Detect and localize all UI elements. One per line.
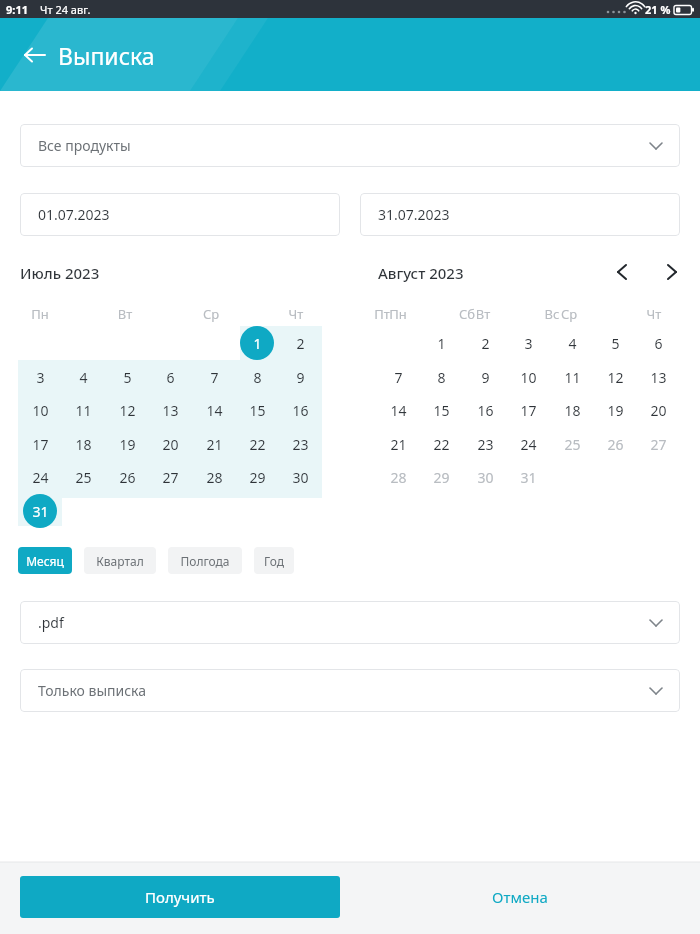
button[interactable]: 19	[594, 393, 636, 427]
button[interactable]: 11	[551, 360, 593, 394]
button[interactable]: 24	[19, 460, 61, 494]
button[interactable]: 6	[637, 326, 679, 360]
staticText: Отмена	[492, 887, 548, 907]
button[interactable]: 13	[637, 360, 679, 394]
button[interactable]: Next month	[654, 255, 690, 289]
button[interactable]: .pdf	[20, 601, 680, 644]
button[interactable]: 4	[551, 326, 593, 360]
button[interactable]: 29	[236, 460, 278, 494]
button[interactable]: 6	[149, 360, 191, 394]
button[interactable]: 18	[551, 393, 593, 427]
staticText: 5	[611, 334, 620, 353]
button[interactable]: 2	[464, 326, 506, 360]
button[interactable]: 12	[594, 360, 636, 394]
button[interactable]: 15	[420, 393, 462, 427]
button[interactable]: 24	[507, 427, 549, 461]
button[interactable]: Квартал	[84, 547, 156, 574]
button[interactable]: 14	[377, 393, 419, 427]
staticText: 31	[520, 468, 537, 487]
button[interactable]: 12	[106, 393, 148, 427]
staticText: 10	[32, 401, 49, 420]
button[interactable]: 29	[420, 460, 462, 494]
button[interactable]: 16	[279, 393, 321, 427]
button[interactable]: 01.07.2023	[20, 193, 340, 236]
button[interactable]: 3	[19, 360, 61, 394]
staticText: 7	[210, 368, 219, 387]
button[interactable]: 16	[464, 393, 506, 427]
button[interactable]: 8	[420, 360, 462, 394]
button[interactable]: 7	[377, 360, 419, 394]
button[interactable]: Все продукты	[20, 124, 680, 167]
staticText: 23	[477, 435, 494, 454]
button[interactable]: 8	[236, 360, 278, 394]
button[interactable]: 1	[236, 326, 278, 360]
button[interactable]: 21	[377, 427, 419, 461]
button[interactable]: 11	[62, 393, 104, 427]
button[interactable]: 5	[594, 326, 636, 360]
button[interactable]: 23	[464, 427, 506, 461]
staticText: 11	[75, 401, 92, 420]
button[interactable]: 30	[464, 460, 506, 494]
staticText: 19	[119, 435, 136, 454]
staticText: 22	[249, 435, 266, 454]
staticText: 29	[433, 468, 450, 487]
button[interactable]: 31	[507, 460, 549, 494]
button[interactable]: Полгода	[168, 547, 242, 574]
staticText: Июль 2023	[20, 263, 100, 283]
button[interactable]: 25	[551, 427, 593, 461]
button[interactable]: 21	[193, 427, 235, 461]
button[interactable]: 15	[236, 393, 278, 427]
button[interactable]: 23	[279, 427, 321, 461]
button[interactable]: 4	[62, 360, 104, 394]
button[interactable]: 28	[377, 460, 419, 494]
staticText: Ср	[190, 305, 232, 323]
staticText: 13	[650, 368, 667, 387]
staticText: 1	[253, 334, 262, 353]
button[interactable]: 19	[106, 427, 148, 461]
button[interactable]: Отмена	[400, 876, 640, 918]
staticText: 20	[162, 435, 179, 454]
button[interactable]: 20	[149, 427, 191, 461]
button[interactable]: 25	[62, 460, 104, 494]
button[interactable]: 7	[193, 360, 235, 394]
button[interactable]: 5	[106, 360, 148, 394]
button[interactable]: 22	[236, 427, 278, 461]
staticText: 3	[36, 368, 45, 387]
staticText: 15	[249, 401, 266, 420]
button[interactable]: 10	[507, 360, 549, 394]
button[interactable]: 1	[420, 326, 462, 360]
button[interactable]: 31	[19, 494, 61, 528]
staticText: Чт	[633, 305, 675, 323]
staticText: Ср	[548, 305, 590, 323]
button[interactable]: 9	[464, 360, 506, 394]
button[interactable]: 3	[507, 326, 549, 360]
button[interactable]: 26	[594, 427, 636, 461]
button[interactable]: 2	[279, 326, 321, 360]
button[interactable]: Год	[254, 547, 294, 574]
button[interactable]: 18	[62, 427, 104, 461]
button[interactable]: 9	[279, 360, 321, 394]
button[interactable]: 22	[420, 427, 462, 461]
button[interactable]: 31.07.2023	[360, 193, 680, 236]
button[interactable]: 17	[19, 427, 61, 461]
staticText: 21	[390, 435, 407, 454]
button[interactable]: 14	[193, 393, 235, 427]
button[interactable]: 13	[149, 393, 191, 427]
button[interactable]: Back	[18, 38, 52, 72]
button[interactable]: 20	[637, 393, 679, 427]
staticText: 13	[162, 401, 179, 420]
button[interactable]: Только выписка	[20, 669, 680, 712]
button[interactable]: 17	[507, 393, 549, 427]
button[interactable]: Месяц	[18, 547, 72, 574]
button[interactable]: Previous month	[604, 255, 640, 289]
button[interactable]: 26	[106, 460, 148, 494]
staticText: 30	[477, 468, 494, 487]
button[interactable]: 10	[19, 393, 61, 427]
button[interactable]: 27	[637, 427, 679, 461]
staticText: 9	[296, 368, 305, 387]
button[interactable]: 30	[279, 460, 321, 494]
button[interactable]: 28	[193, 460, 235, 494]
button[interactable]: 27	[149, 460, 191, 494]
button[interactable]: Получить	[20, 876, 340, 918]
staticText: .pdf	[38, 613, 64, 632]
